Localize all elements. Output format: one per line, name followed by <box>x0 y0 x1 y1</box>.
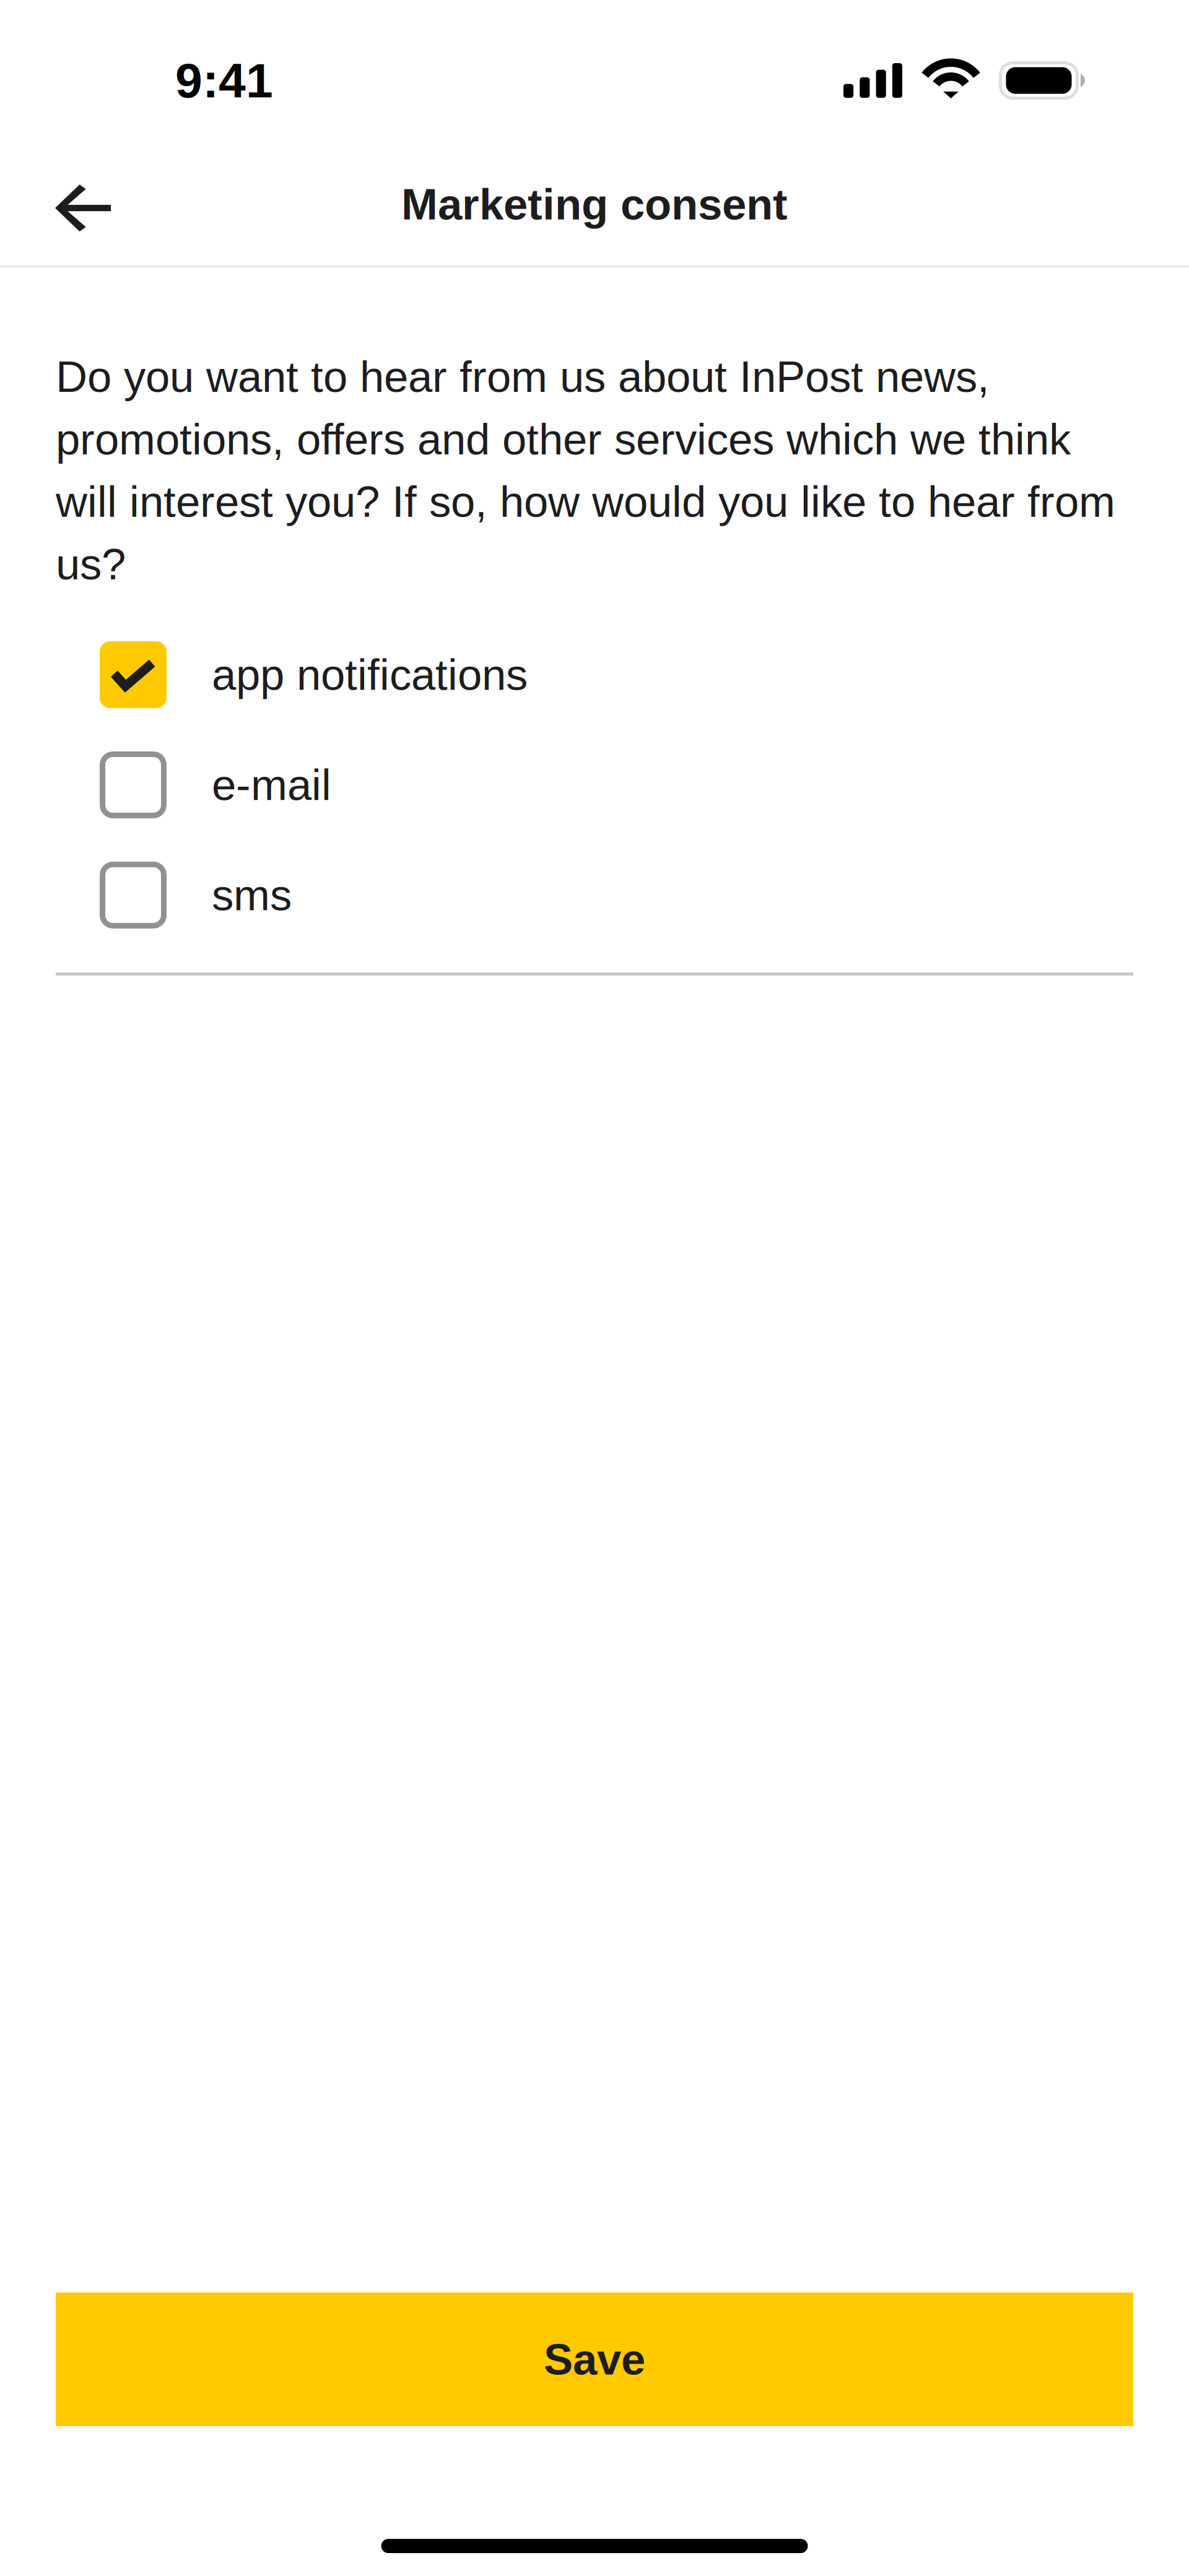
staticText: sms <box>212 871 292 919</box>
button[interactable]: Save <box>56 2292 1133 2426</box>
staticText: 9:41 <box>175 53 273 108</box>
staticText: Do you want to hear from us about InPost… <box>56 352 1115 589</box>
button[interactable]: e-mail <box>56 730 1133 840</box>
staticText: Save <box>544 2335 645 2384</box>
button[interactable]: app notifications <box>56 620 1133 730</box>
staticText: app notifications <box>212 650 528 699</box>
staticText: Marketing consent <box>401 180 788 229</box>
button[interactable]: sms <box>56 840 1133 950</box>
button[interactable]: Back <box>0 144 166 265</box>
staticText: e-mail <box>212 760 331 809</box>
